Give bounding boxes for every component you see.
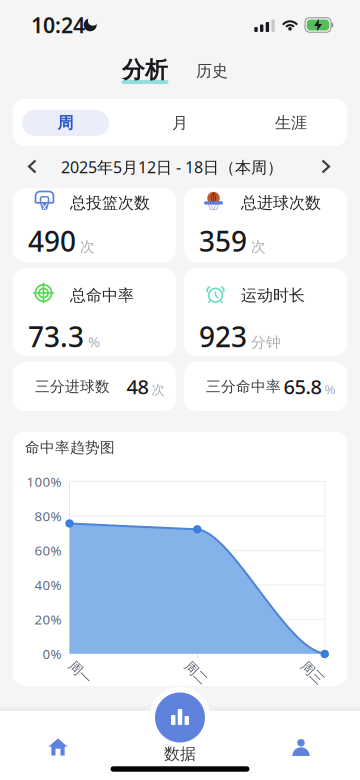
button[interactable]: 生涯 — [247, 110, 334, 136]
staticText: % — [88, 332, 100, 351]
button[interactable]: 下一周 — [320, 159, 331, 173]
button[interactable]: 历史 — [196, 61, 228, 81]
staticText: 历史 — [196, 61, 228, 81]
button[interactable]: 数据 — [149, 687, 210, 761]
staticText: 490 — [28, 222, 76, 260]
staticText: 359 — [199, 222, 247, 260]
button[interactable]: 周 — [22, 110, 109, 136]
staticText: 48 — [126, 373, 148, 400]
button[interactable]: 上一周 — [27, 159, 38, 173]
staticText: 总进球次数 — [241, 193, 321, 213]
staticText: 总命中率 — [70, 286, 134, 305]
button[interactable]: 首页 — [48, 738, 67, 755]
button[interactable]: 月 — [136, 110, 223, 136]
staticText: 次 — [80, 238, 95, 256]
staticText: 60% — [34, 541, 61, 559]
staticText: 三分命中率 — [206, 377, 281, 395]
staticText: 运动时长 — [241, 286, 305, 305]
staticText: 20% — [34, 610, 61, 628]
staticText: 10:24 — [31, 11, 85, 39]
staticText: 100% — [26, 473, 61, 490]
staticText: 73.3 — [28, 318, 84, 355]
staticText: 分钟 — [251, 333, 281, 351]
staticText: 命中率趋势图 — [25, 438, 115, 456]
staticText: 80% — [34, 507, 61, 525]
staticText: 分析 — [122, 56, 168, 84]
staticText: 923 — [199, 318, 247, 355]
staticText: 周一 — [67, 664, 93, 681]
staticText: 三分进球数 — [35, 377, 110, 395]
staticText: 周二 — [183, 664, 209, 681]
staticText: % — [324, 380, 335, 398]
staticText: 月 — [172, 113, 188, 133]
staticText: 生涯 — [275, 113, 307, 133]
staticText: 总投篮次数 — [70, 193, 150, 213]
staticText: 0% — [42, 645, 61, 663]
staticText: 周 — [57, 113, 73, 133]
staticText: 65.8 — [283, 373, 321, 400]
staticText: 40% — [34, 576, 61, 594]
staticText: 次 — [251, 238, 266, 256]
staticText: 次 — [151, 382, 164, 398]
button[interactable]: 分析 — [122, 56, 168, 84]
staticText: 2025年5月12日 - 18日（本周） — [61, 156, 283, 178]
staticText: 数据 — [164, 744, 196, 764]
button[interactable]: 我的 — [292, 739, 310, 756]
staticText: 周三 — [299, 664, 325, 681]
